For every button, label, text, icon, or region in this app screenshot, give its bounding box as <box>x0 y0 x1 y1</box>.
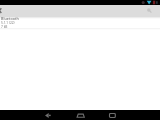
staticText: 7 kB <box>1 25 8 29</box>
button[interactable]: Recent apps <box>106 110 120 120</box>
staticText: Bluetooth <box>1 16 19 21</box>
staticText: 5.1.1 (22) <box>1 21 15 25</box>
button[interactable]: Back <box>41 110 55 120</box>
button[interactable]: Home <box>74 110 88 120</box>
button[interactable]: Navigate up <box>0 5 8 17</box>
button[interactable]: Search <box>144 5 156 17</box>
